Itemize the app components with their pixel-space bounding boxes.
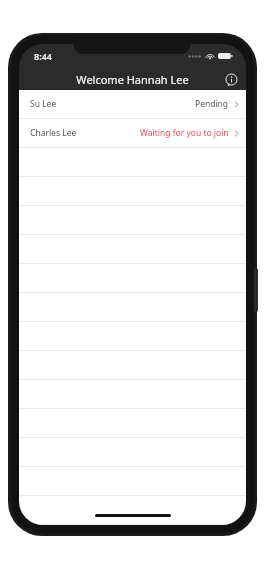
staticText: Waiting for you to join (140, 127, 229, 139)
button[interactable]: Su Lee (19, 90, 246, 118)
staticText: Charles Lee (30, 127, 77, 139)
button[interactable]: Info (221, 69, 241, 89)
staticText: Su Lee (30, 98, 57, 110)
button[interactable]: Charles Lee (19, 119, 246, 147)
staticText: Welcome Hannah Lee (76, 72, 189, 87)
staticText: Pending (195, 98, 229, 110)
staticText: 8:44 (34, 50, 52, 62)
